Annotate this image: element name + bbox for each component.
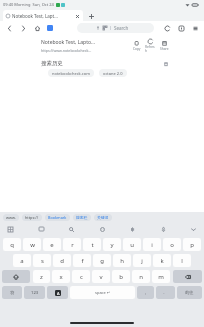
button[interactable]: Keyboard layout <box>36 224 47 235</box>
button[interactable]: Search <box>66 224 77 235</box>
staticText: q <box>10 241 14 249</box>
button[interactable]: w <box>23 238 41 251</box>
button[interactable]: f <box>73 254 91 267</box>
button[interactable]: Edit <box>145 39 156 53</box>
button[interactable]: Reload <box>162 23 172 33</box>
button[interactable]: s <box>33 254 51 267</box>
button[interactable]: Home <box>32 23 42 33</box>
staticText: p <box>190 241 194 249</box>
staticText: 搜索栏 <box>76 215 88 220</box>
staticText: e <box>50 241 54 249</box>
button[interactable]: x <box>52 270 70 283</box>
staticText: g <box>100 257 104 265</box>
staticText: c <box>80 273 83 281</box>
button[interactable]: Copy <box>131 41 142 51</box>
staticText: h <box>120 257 124 265</box>
button[interactable]: 。 <box>156 286 175 299</box>
staticText: i <box>151 241 153 249</box>
staticText: u <box>130 241 134 249</box>
button[interactable]: r <box>63 238 81 251</box>
staticText: 前往 <box>185 290 194 295</box>
staticText: s <box>41 257 44 265</box>
button[interactable]: 搜索栏 <box>73 214 91 221</box>
button[interactable]: j <box>133 254 151 267</box>
staticText: https://www.notebookcheck… <box>41 48 92 53</box>
button[interactable]: Notebook Test, Lapt… <box>3 10 83 21</box>
button[interactable]: Notebook Test, Lapto… <box>0 37 204 55</box>
staticText: https:// <box>25 215 39 220</box>
button[interactable]: v <box>92 270 110 283</box>
button[interactable]: y <box>103 238 121 251</box>
staticText: A <box>57 291 60 296</box>
button[interactable]: Menu <box>190 23 200 33</box>
button[interactable]: q <box>3 238 21 251</box>
button[interactable]: ， <box>137 286 154 299</box>
staticText: Refresh <box>145 45 156 53</box>
button[interactable]: u <box>123 238 141 251</box>
button[interactable]: Hide keyboard <box>188 224 199 235</box>
staticText: www. <box>6 215 16 220</box>
staticText: octane 2.0 <box>103 71 123 76</box>
button[interactable]: k <box>153 254 171 267</box>
button[interactable]: Back <box>4 23 14 33</box>
button[interactable]: c <box>72 270 90 283</box>
button[interactable]: 前往 <box>177 286 202 299</box>
button[interactable]: d <box>53 254 71 267</box>
button[interactable]: m <box>152 270 170 283</box>
button[interactable]: Share <box>159 41 170 51</box>
staticText: n <box>139 273 143 281</box>
staticText: w <box>30 241 35 249</box>
staticText: x <box>59 273 63 281</box>
button[interactable]: https:// <box>22 214 42 221</box>
button[interactable]: www. <box>3 214 19 221</box>
button[interactable]: space ↵ <box>70 286 135 299</box>
button[interactable]: Sound <box>127 224 138 235</box>
button[interactable]: n <box>132 270 150 283</box>
staticText: d <box>60 257 64 265</box>
button[interactable]: Emoji <box>97 224 108 235</box>
staticText: f <box>81 257 84 265</box>
staticText: b <box>119 273 123 281</box>
button[interactable]: Delete history <box>162 60 170 68</box>
button[interactable]: 123 <box>24 286 45 299</box>
button[interactable]: notebookcheck.com <box>48 69 94 77</box>
button[interactable]: p <box>183 238 201 251</box>
staticText: 搜索历史 <box>41 60 63 67</box>
button[interactable]: Close tab <box>74 13 80 19</box>
staticText: 符 <box>10 290 15 295</box>
button[interactable]: Clipboard <box>5 224 16 235</box>
button[interactable]: octane 2.0 <box>99 69 127 77</box>
button[interactable]: a <box>13 254 31 267</box>
button[interactable]: Shift <box>2 270 30 283</box>
button[interactable]: Language <box>47 286 68 299</box>
button[interactable]: b <box>112 270 130 283</box>
button[interactable]: Search <box>77 23 154 33</box>
button[interactable]: New tab <box>86 11 96 21</box>
staticText: Bookmark <box>48 215 67 220</box>
button[interactable]: Tabs <box>176 23 186 33</box>
button[interactable]: i <box>143 238 161 251</box>
button[interactable]: g <box>93 254 111 267</box>
staticText: v <box>99 273 103 281</box>
staticText: m <box>158 273 164 281</box>
button[interactable]: Bookmark <box>45 214 70 221</box>
button[interactable]: 符 <box>2 286 22 299</box>
button[interactable]: Site icon <box>47 25 53 31</box>
button[interactable]: Forward <box>18 23 28 33</box>
staticText: j <box>141 257 143 265</box>
staticText: z <box>40 273 43 281</box>
staticText: space ↵ <box>95 290 111 295</box>
button[interactable]: Backspace <box>173 270 202 283</box>
staticText: k <box>160 257 164 265</box>
staticText: a <box>20 257 24 265</box>
button[interactable]: t <box>83 238 101 251</box>
button[interactable]: 关键词 <box>94 214 112 221</box>
button[interactable]: z <box>33 270 50 283</box>
button[interactable]: h <box>113 254 131 267</box>
staticText: 关键词 <box>97 215 109 220</box>
staticText: 09:40 Morning Sun, Oct 24 <box>3 2 54 7</box>
button[interactable]: e <box>43 238 61 251</box>
button[interactable]: Voice input <box>158 224 169 235</box>
button[interactable]: l <box>173 254 191 267</box>
button[interactable]: o <box>163 238 181 251</box>
